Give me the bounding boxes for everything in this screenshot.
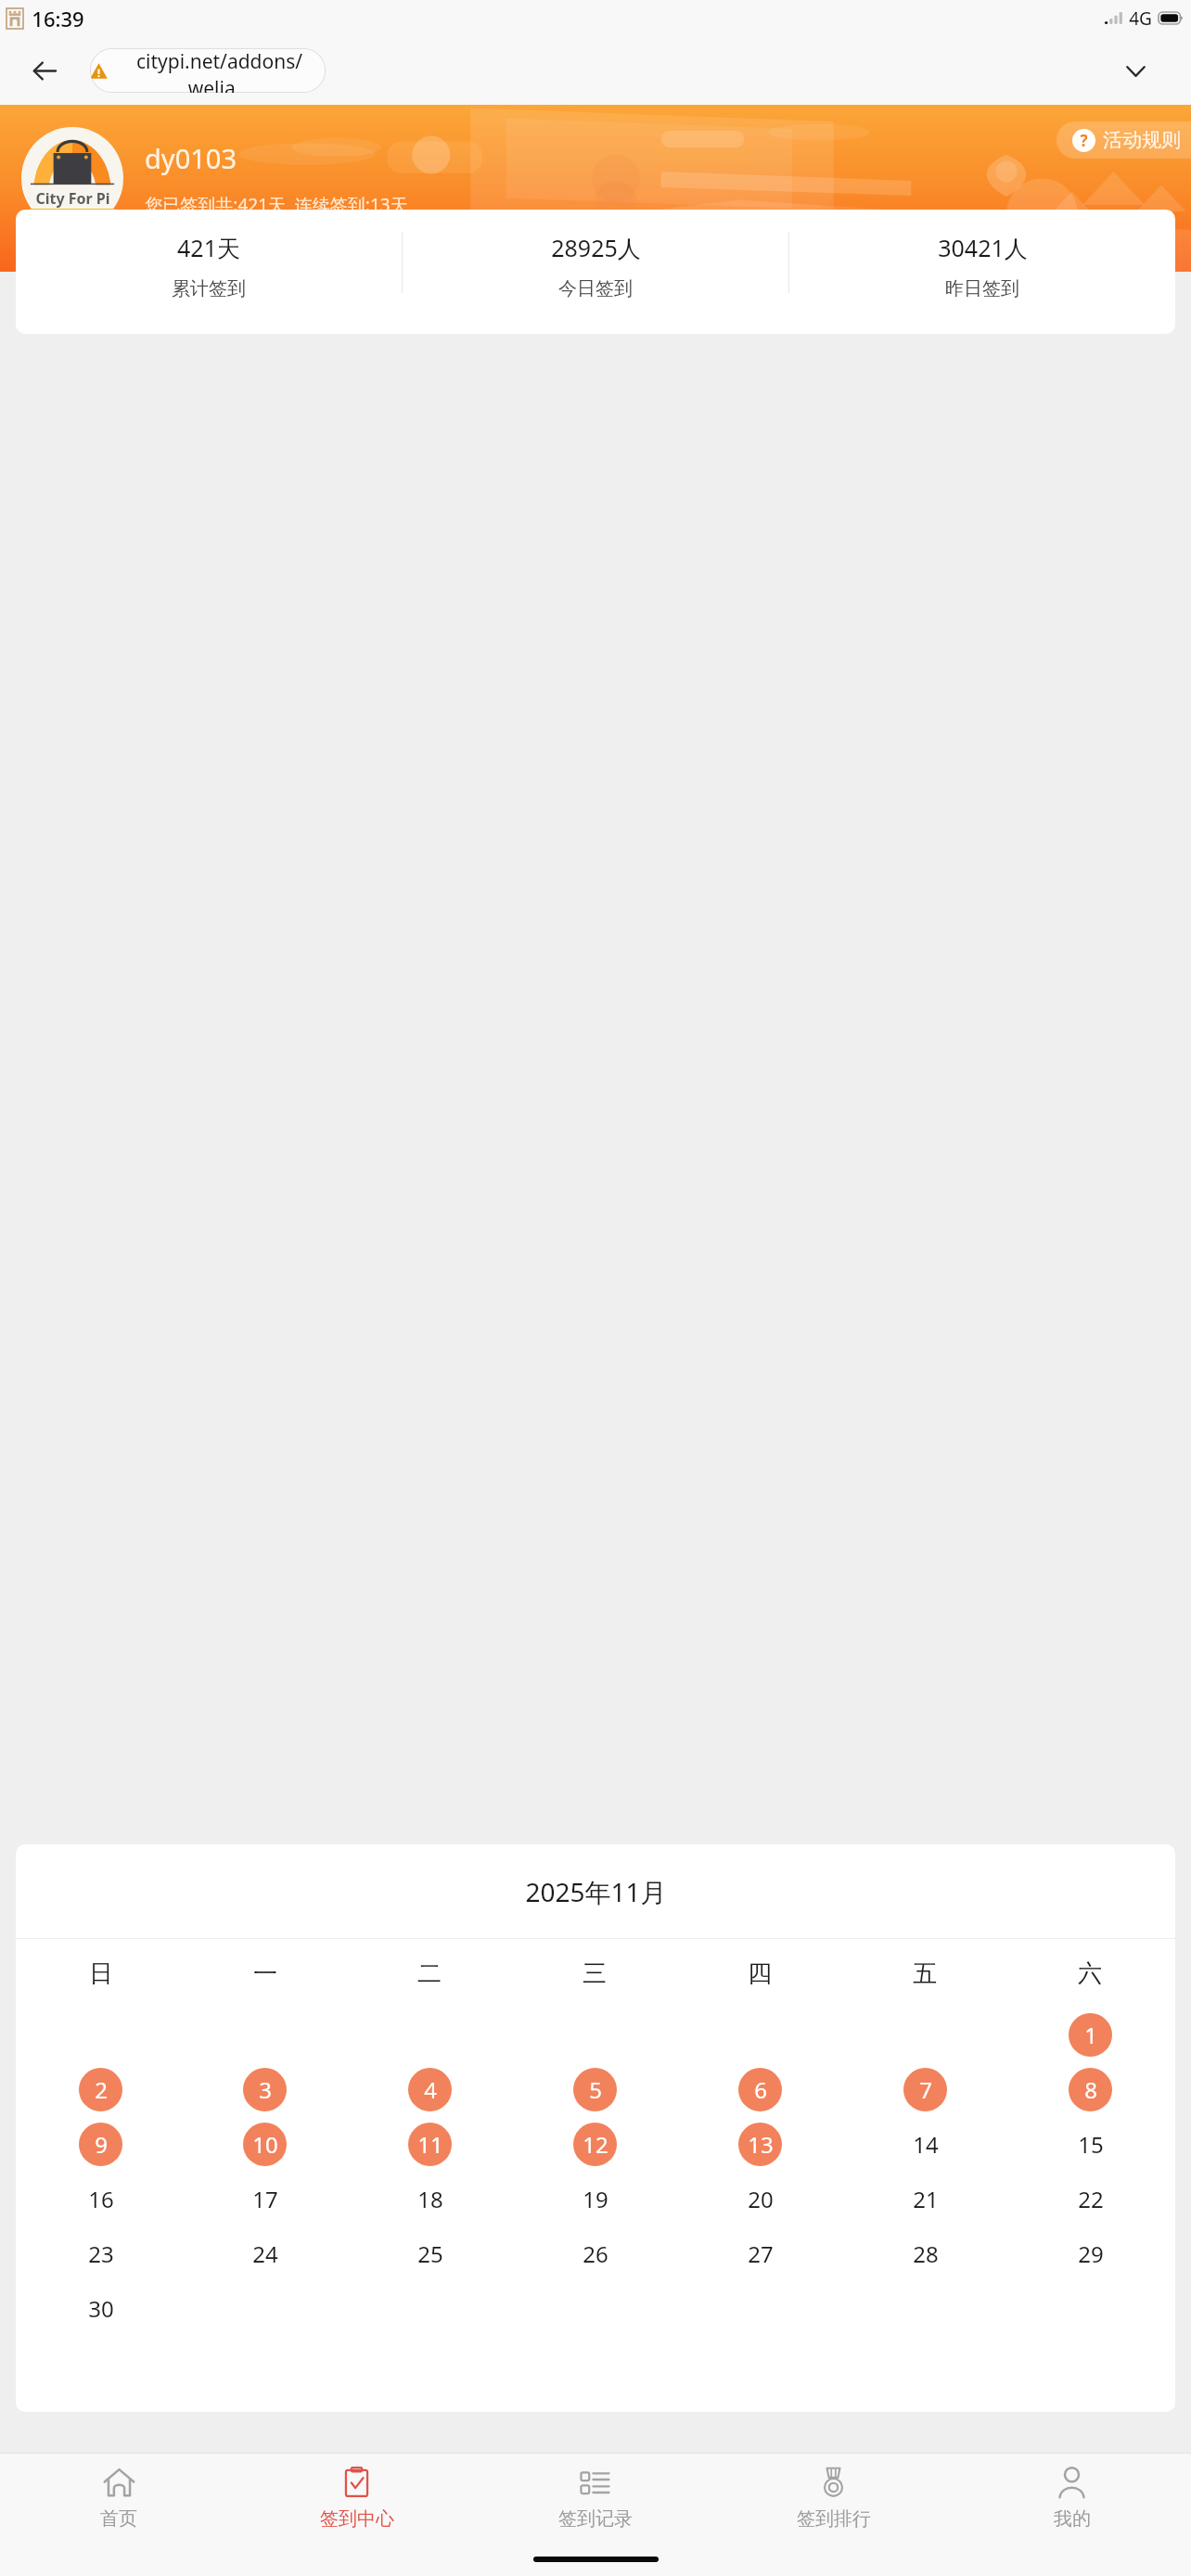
staticText: 您已签到共:421天 连续签到:13天 [145,193,408,217]
button[interactable]: ? [1057,121,1191,159]
staticText: 21 [913,2184,939,2214]
button[interactable]: 5 [573,2068,617,2111]
button[interactable]: 2 [79,2068,122,2111]
staticText: 6 [754,2074,767,2105]
button[interactable]: 22 [1069,2177,1112,2221]
staticText: 一 [253,1958,277,1989]
staticText: 29 [1078,2238,1104,2269]
staticText: 五 [913,1958,937,1989]
staticText: 8 [1084,2074,1097,2105]
staticText: 30421人 [938,232,1028,263]
staticText: 23 [88,2238,114,2269]
staticText: 30 [88,2293,114,2324]
button[interactable]: 25 [408,2232,452,2276]
staticText: 首页 [100,2507,137,2531]
staticText: 24 [252,2238,278,2269]
button[interactable]: 签到中心 [237,2454,476,2543]
staticText: 25 [417,2238,443,2269]
button[interactable]: 16 [79,2177,122,2221]
staticText: 19 [583,2184,608,2214]
button[interactable]: 我的 [953,2454,1191,2543]
button[interactable]: 26 [573,2232,617,2276]
staticText: 14 [913,2129,939,2160]
button[interactable]: 11 [408,2123,452,2166]
staticText: 日 [89,1958,113,1989]
staticText: citypi.net/addons/welia… [113,48,326,93]
staticText: 15 [1078,2129,1104,2160]
staticText: 16 [88,2184,114,2214]
button[interactable]: 6 [738,2068,782,2111]
button[interactable]: 30421人 [789,232,1175,300]
button[interactable]: 15 [1069,2123,1112,2166]
staticText: 4G [1129,6,1152,31]
button[interactable]: citypi.net/addons/welia… [90,48,326,93]
staticText: 1 [1084,2020,1097,2050]
button[interactable]: 21 [903,2177,947,2221]
staticText: 3 [259,2074,272,2105]
staticText: 四 [748,1958,772,1989]
button[interactable]: 8 [1069,2068,1112,2111]
staticText: 10 [252,2129,278,2160]
button[interactable]: 28 [903,2232,947,2276]
button[interactable]: 9 [79,2123,122,2166]
button[interactable]: 23 [79,2232,122,2276]
button[interactable]: 4 [408,2068,452,2111]
button[interactable]: 17 [243,2177,287,2221]
staticText: 签到记录 [558,2507,633,2531]
button[interactable]: 19 [573,2177,617,2221]
staticText: City For Pi [35,188,110,209]
button[interactable]: 签到记录 [476,2454,714,2543]
staticText: 活动规则 [1103,128,1181,152]
staticText: 16:39 [32,5,84,32]
staticText: ? [1080,130,1088,151]
staticText: 9 [95,2129,108,2160]
button[interactable]: 7 [903,2068,947,2111]
button[interactable]: 3 [243,2068,287,2111]
staticText: 27 [748,2238,774,2269]
staticText: 签到排行 [797,2507,871,2531]
button[interactable]: 18 [408,2177,452,2221]
staticText: 今日签到 [558,277,633,300]
button[interactable]: 10 [243,2123,287,2166]
staticText: 28 [913,2238,939,2269]
staticText: 26 [583,2238,608,2269]
staticText: 签到中心 [320,2507,394,2531]
button[interactable]: 13 [738,2123,782,2166]
button[interactable]: 14 [903,2123,947,2166]
button[interactable]: 20 [738,2177,782,2221]
staticText: dy0103 [145,140,237,176]
staticText: 4 [424,2074,437,2105]
staticText: 三 [583,1958,607,1989]
staticText: 28925人 [551,232,641,263]
button[interactable]: 27 [738,2232,782,2276]
staticText: 7 [919,2074,932,2105]
staticText: 二 [417,1958,442,1989]
button[interactable]: 24 [243,2232,287,2276]
button[interactable]: 29 [1069,2232,1112,2276]
staticText: 421天 [177,232,240,263]
button[interactable]: 421天 [16,232,402,300]
staticText: 22 [1078,2184,1104,2214]
staticText: 六 [1078,1958,1102,1989]
staticText: 18 [417,2184,443,2214]
staticText: 2025年11月 [525,1874,667,1909]
button[interactable]: Back [0,36,90,105]
staticText: 昨日签到 [945,277,1019,300]
staticText: 5 [589,2074,602,2105]
button[interactable]: 28925人 [403,232,788,300]
staticText: 11 [417,2129,443,2160]
button[interactable]: 首页 [0,2454,237,2543]
button[interactable]: 30 [79,2287,122,2330]
staticText: 13 [748,2129,774,2160]
button[interactable]: 已签到 [145,228,397,266]
button[interactable]: 1 [1069,2013,1112,2057]
staticText: 我的 [1054,2507,1091,2531]
button[interactable]: More options [1080,36,1191,105]
staticText: 20 [748,2184,774,2214]
button[interactable]: 签到排行 [714,2454,953,2543]
button[interactable]: 12 [573,2123,617,2166]
staticText: 17 [252,2184,278,2214]
staticText: 12 [583,2129,608,2160]
